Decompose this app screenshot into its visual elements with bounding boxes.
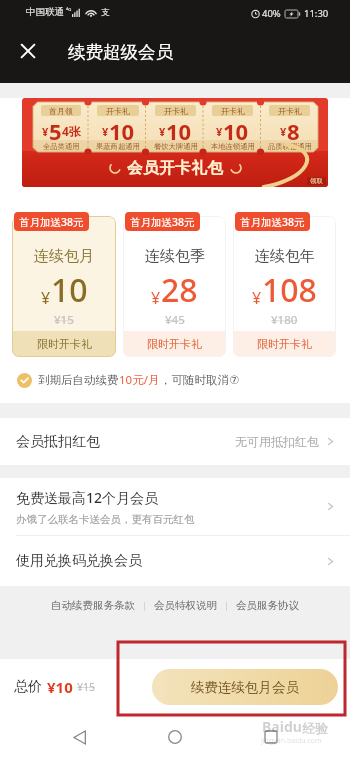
button[interactable]: 免费送最高12个月会员 xyxy=(0,478,350,535)
staticText: ¥ xyxy=(42,124,49,139)
staticText: 开卡礼 xyxy=(278,106,302,116)
staticText: 108 xyxy=(262,268,317,312)
staticText: 连续包年 xyxy=(255,247,315,266)
staticText: 首月加送38元 xyxy=(130,215,195,229)
button[interactable]: Recents xyxy=(254,720,288,754)
staticText: 10元/月 xyxy=(119,372,160,388)
staticText: 经验 xyxy=(302,720,328,736)
staticText: 到期后自动续费 xyxy=(38,373,119,387)
staticText: 开卡礼 xyxy=(164,106,188,116)
staticText: 开卡礼 xyxy=(106,106,130,116)
staticText: 使用兑换码兑换会员 xyxy=(16,552,142,570)
staticText: 全品类通用 xyxy=(43,142,80,151)
staticText: 首月加送38元 xyxy=(240,215,305,229)
staticText: 果蔬商超通用 xyxy=(96,142,140,151)
button[interactable]: 连续包季 xyxy=(123,216,226,357)
button[interactable]: 会员抵扣红包 xyxy=(0,418,350,465)
button[interactable]: Close xyxy=(11,34,45,68)
staticText: 会员抵扣红包 xyxy=(16,433,100,451)
staticText: 28 xyxy=(161,268,198,312)
staticText: ¥ xyxy=(102,124,109,139)
button[interactable]: 连续包年 xyxy=(233,216,336,357)
staticText: ，可随时取消⑦ xyxy=(160,373,240,387)
staticText: 11:30 xyxy=(304,7,329,20)
button[interactable]: 使用兑换码兑换会员 xyxy=(0,536,350,586)
staticText: 连续包月 xyxy=(34,247,94,266)
button[interactable]: 会员服务协议 xyxy=(236,599,299,612)
staticText: ¥ xyxy=(41,287,51,309)
staticText: ¥ xyxy=(159,124,166,139)
staticText: 续费超级会员 xyxy=(68,41,173,63)
staticText: ⁴ᴳ xyxy=(66,6,72,15)
staticText: 限时开卡礼 xyxy=(257,337,312,351)
button[interactable]: 续费连续包月会员 xyxy=(152,669,338,705)
staticText: 无可用抵扣红包 xyxy=(235,434,319,449)
staticText: ¥ xyxy=(151,287,161,309)
staticText: 总价 xyxy=(14,678,42,696)
button[interactable]: 自动续费服务条款 xyxy=(51,599,135,612)
staticText: 开卡礼 xyxy=(221,106,245,116)
staticText: 10 xyxy=(109,116,135,140)
staticText: 首月加送38元 xyxy=(19,215,84,229)
staticText: 连续包季 xyxy=(145,247,205,266)
staticText: ¥15 xyxy=(77,680,96,694)
staticText: ¥15 xyxy=(54,312,74,328)
staticText: 10 xyxy=(223,116,249,140)
staticText: 续费连续包月会员 xyxy=(191,679,299,696)
staticText: ¥ xyxy=(252,287,262,309)
button[interactable]: 首月领 xyxy=(22,98,328,187)
staticText: 8 xyxy=(287,116,300,140)
button[interactable]: Home xyxy=(158,720,192,754)
staticText: ¥10 xyxy=(47,677,73,697)
staticText: 会员开卡礼包 xyxy=(127,158,224,178)
staticText: 免费送最高12个月会员 xyxy=(16,488,159,507)
staticText: 限时开卡礼 xyxy=(147,337,202,351)
staticText: 本地连锁通用 xyxy=(211,142,255,151)
staticText: 办饿了么联名卡送会员，更有百元红包 xyxy=(16,513,195,526)
staticText: 4张 xyxy=(62,123,81,139)
staticText: ¥180 xyxy=(271,312,298,328)
staticText: ¥ xyxy=(280,124,287,139)
staticText: 5 xyxy=(49,116,62,140)
button[interactable]: 连续包月 xyxy=(12,216,116,357)
staticText: 限时开卡礼 xyxy=(37,337,92,351)
staticText: ¥45 xyxy=(165,312,185,328)
staticText: Baidu xyxy=(262,717,302,736)
staticText: 支 xyxy=(101,7,110,18)
staticText: 40% xyxy=(262,7,281,20)
staticText: 10 xyxy=(166,116,192,140)
staticText: | xyxy=(217,599,236,611)
staticText: 中国联通 xyxy=(26,6,64,18)
staticText: 品质联盟通用 xyxy=(268,142,312,151)
staticText: 餐饮大牌通用 xyxy=(154,142,198,151)
staticText: 领取 xyxy=(310,177,323,185)
staticText: jingyan.baidu.com xyxy=(261,736,322,746)
staticText: ¥ xyxy=(216,124,223,139)
staticText: 首月领 xyxy=(49,106,73,116)
button[interactable]: Back xyxy=(62,720,96,754)
button[interactable]: 会员特权说明 xyxy=(154,599,217,612)
staticText: 10 xyxy=(51,268,88,312)
staticText: | xyxy=(135,599,154,611)
